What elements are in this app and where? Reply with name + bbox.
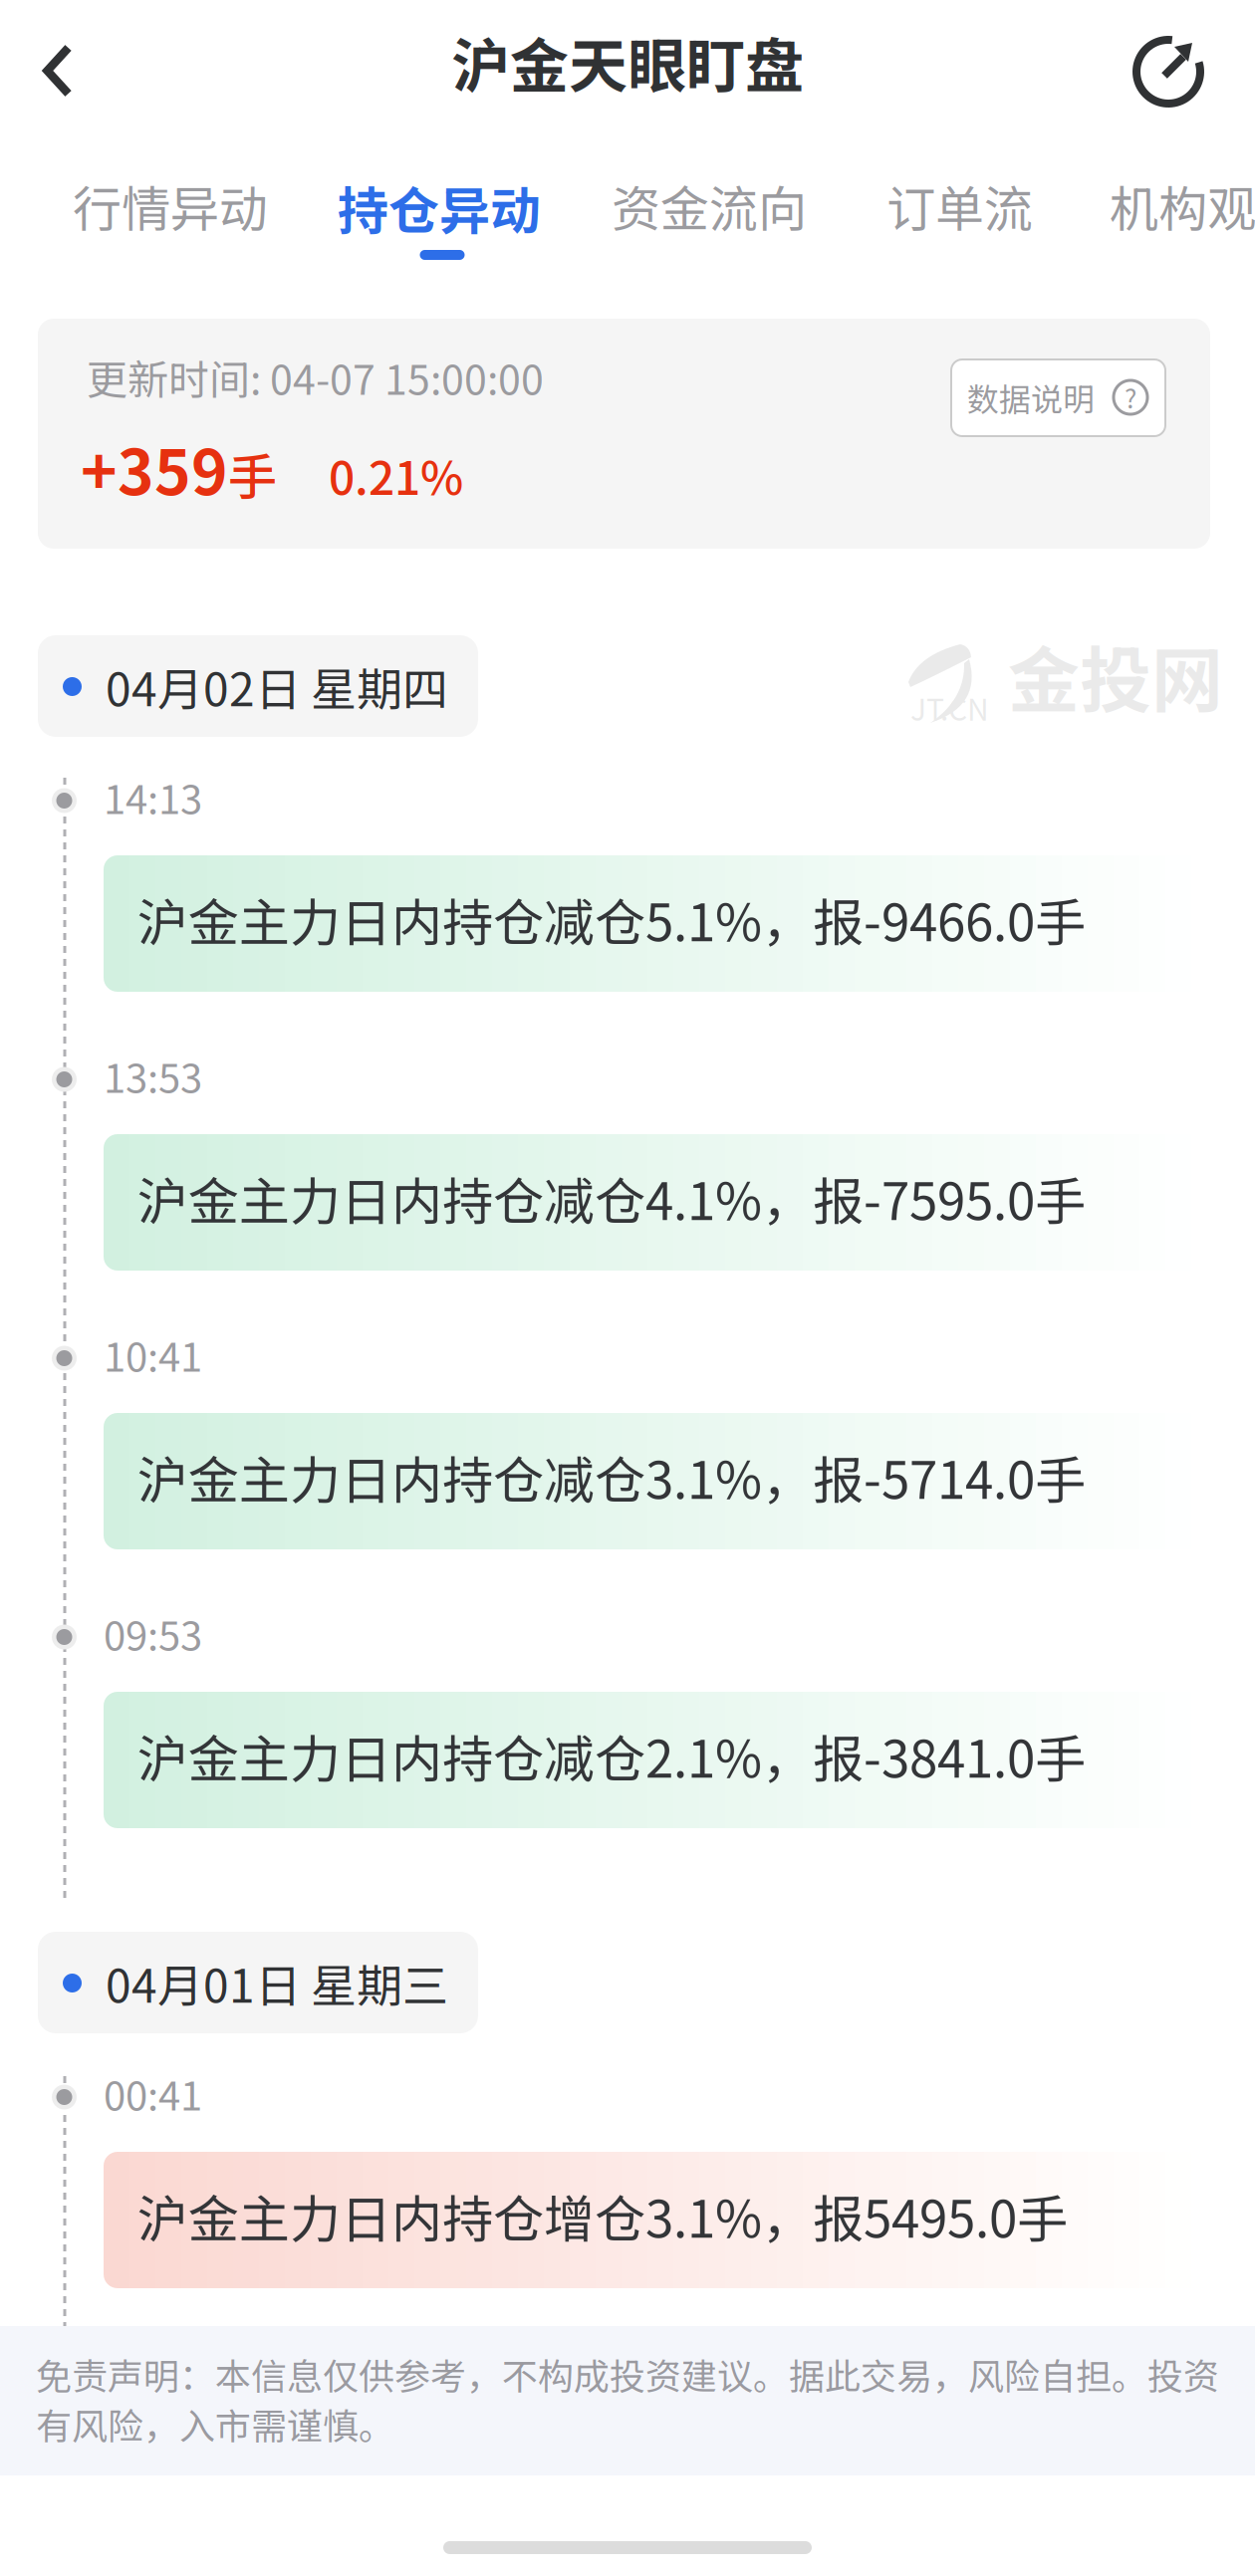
button[interactable]: 返回: [0, 6, 118, 135]
button[interactable]: 机构观点: [1110, 170, 1255, 280]
staticText: 沪金主力日内持仓减仓3.1%，报-5714.0手: [137, 1440, 1086, 1513]
button[interactable]: 分享: [1104, 7, 1233, 136]
staticText: 资金流向: [612, 170, 807, 241]
staticText: 免责声明：本信息仅供参考，不构成投资建议。据此交易，风险自担。投资: [36, 2348, 1219, 2400]
staticText: 更新时间: 04-07 15:00:00: [87, 348, 544, 407]
staticText: 有风险，入市需谨慎。: [36, 2398, 394, 2450]
button[interactable]: 订单流: [886, 170, 1033, 280]
staticText: ?: [1125, 379, 1136, 416]
staticText: 沪金天眼盯盘: [451, 19, 804, 104]
staticText: 沪金主力日内持仓减仓5.1%，报-9466.0手: [137, 882, 1086, 956]
staticText: 沪金主力日内持仓减仓4.1%，报-7595.0手: [137, 1161, 1086, 1235]
button[interactable]: 行情异动: [73, 170, 268, 280]
button[interactable]: 资金流向: [612, 170, 807, 280]
button[interactable]: 数据说明: [951, 359, 1165, 436]
staticText: +359: [81, 423, 228, 513]
staticText: 订单流: [886, 170, 1033, 241]
staticText: 00:41: [104, 2064, 202, 2122]
staticText: 手: [228, 438, 277, 509]
staticText: 行情异动: [73, 170, 268, 241]
staticText: 沪金主力日内持仓减仓2.1%，报-3841.0手: [137, 1719, 1086, 1792]
staticText: 机构观点: [1110, 170, 1255, 241]
staticText: 04月01日 星期三: [106, 1950, 448, 2016]
staticText: 数据说明: [967, 374, 1095, 421]
staticText: 13:53: [104, 1047, 202, 1104]
staticText: 09:53: [104, 1604, 202, 1662]
staticText: 沪金主力日内持仓增仓3.1%，报5495.0手: [137, 2179, 1068, 2252]
staticText: 10:41: [104, 1325, 202, 1383]
staticText: 04月02日 星期四: [106, 653, 448, 720]
staticText: 0.21%: [329, 442, 463, 508]
staticText: 金投网: [1008, 623, 1223, 727]
button[interactable]: 持仓异动: [338, 170, 541, 280]
staticText: JT.CN: [910, 686, 989, 729]
staticText: 持仓异动: [338, 170, 541, 244]
staticText: 14:13: [104, 768, 202, 825]
